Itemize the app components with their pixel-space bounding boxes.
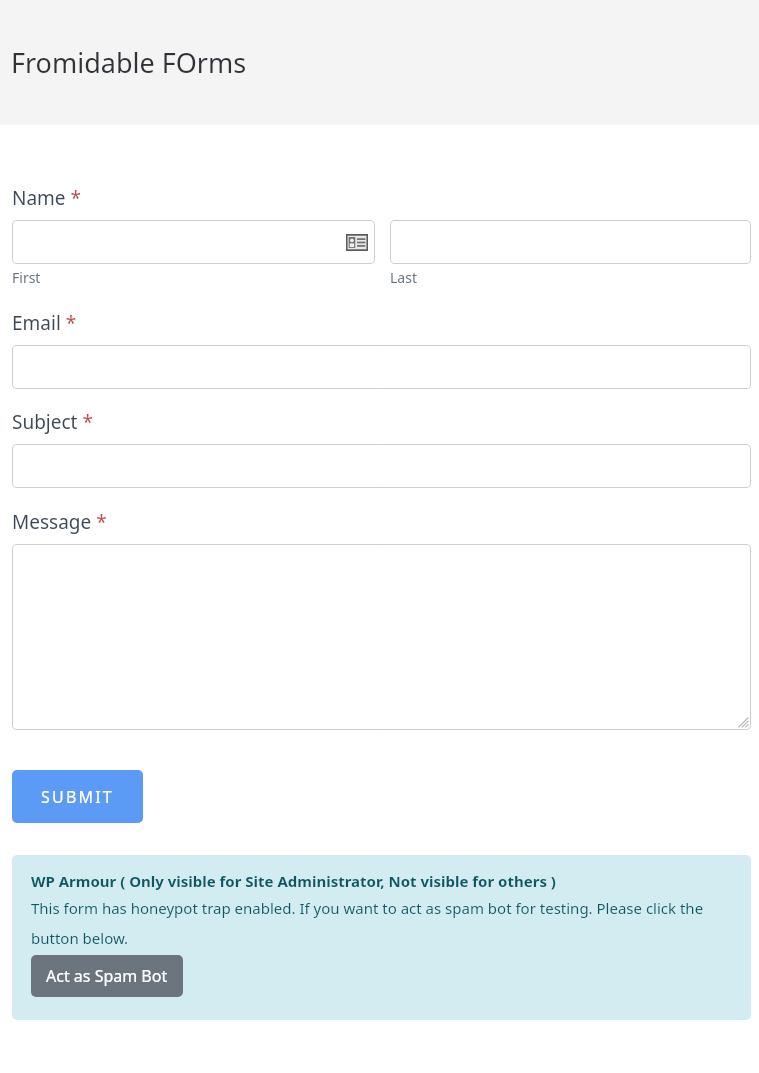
button[interactable]: SUBMIT	[12, 770, 143, 823]
button[interactable]	[12, 345, 751, 389]
staticText: Act as Spam Bot	[46, 965, 168, 987]
staticText: Name *	[12, 185, 81, 211]
staticText: Message *	[12, 509, 107, 535]
staticText: SUBMIT	[41, 786, 114, 808]
staticText: Email *	[12, 310, 77, 336]
staticText: First	[12, 268, 41, 287]
button[interactable]	[12, 444, 751, 488]
button[interactable]: Autofill contact	[346, 234, 368, 251]
button[interactable]	[390, 220, 751, 264]
staticText: Subject *	[12, 409, 93, 435]
staticText: Last	[390, 268, 417, 287]
button[interactable]: Act as Spam Bot	[31, 955, 183, 997]
staticText: WP Armour ( Only visible for Site Admini…	[31, 871, 556, 891]
staticText: This form has honeypot trap enabled. If …	[31, 898, 721, 948]
staticText: Fromidable FOrms	[11, 44, 247, 81]
button[interactable]	[12, 544, 751, 730]
button[interactable]: Autofill contact	[12, 220, 375, 264]
